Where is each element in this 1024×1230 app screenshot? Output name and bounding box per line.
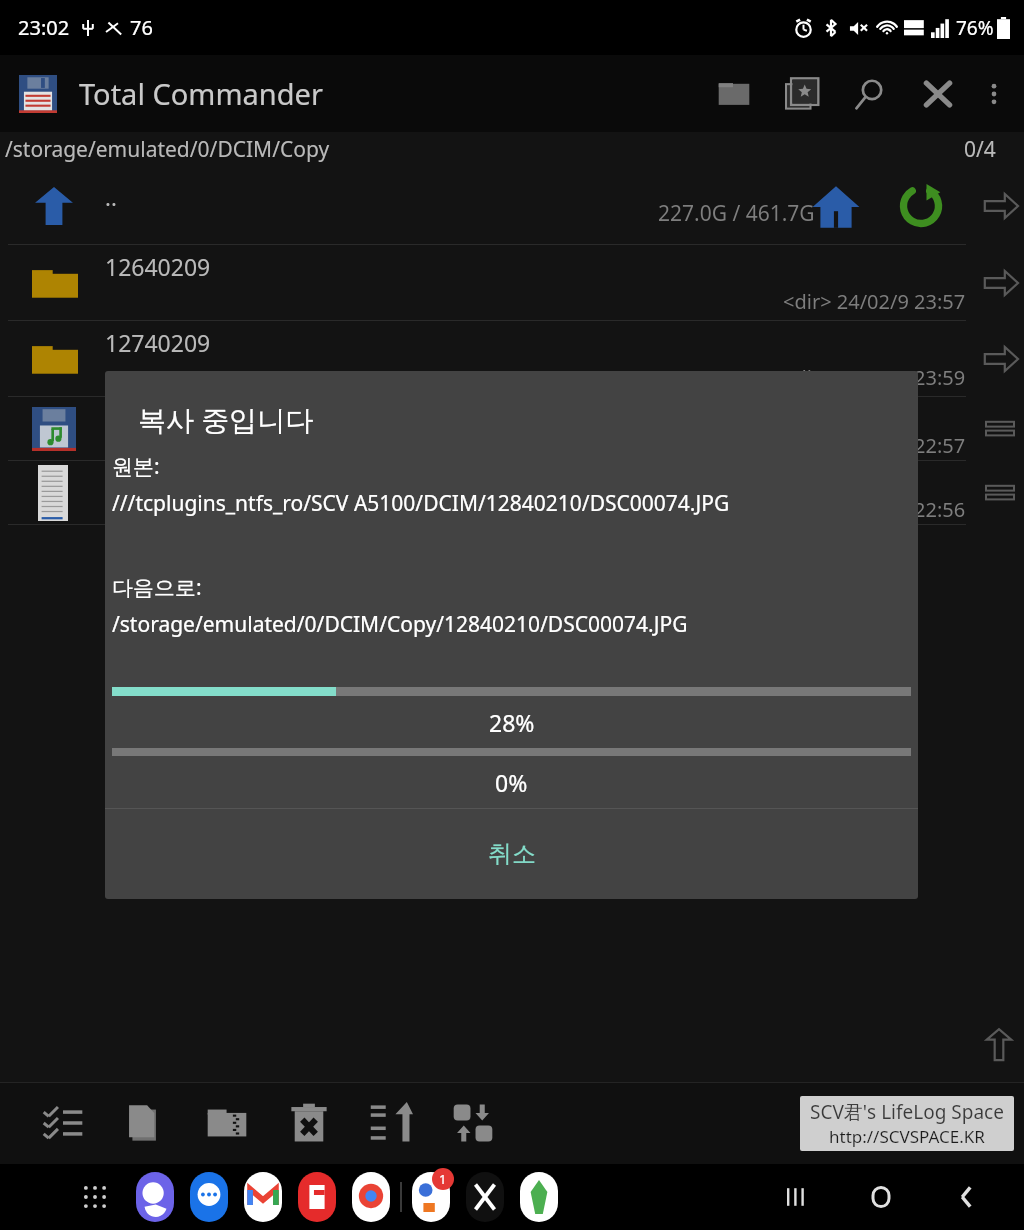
staticText: 76%: [956, 15, 994, 41]
staticText: SCV君's LifeLog Space: [810, 1099, 1004, 1125]
button[interactable]: 취소: [105, 809, 918, 899]
staticText: 다음으로:: [112, 573, 202, 602]
button[interactable]: Open folder: [700, 60, 768, 128]
staticText: 0/4: [964, 135, 996, 164]
staticText: /storage/emulated/0/DCIM/Copy: [5, 135, 330, 164]
button[interactable]: 12740209: [0, 321, 1024, 397]
button[interactable]: Recents: [752, 1164, 838, 1230]
button[interactable]: Select: [22, 1082, 104, 1164]
button[interactable]: Open: [980, 186, 1020, 226]
button[interactable]: App: [190, 1172, 228, 1222]
staticText: ..: [105, 182, 117, 212]
button[interactable]: Close: [904, 60, 972, 128]
button[interactable]: Zip: [186, 1082, 268, 1164]
button[interactable]: App: [466, 1172, 504, 1222]
staticText: 22:57: [914, 432, 966, 459]
button[interactable]: App: [298, 1172, 336, 1222]
button[interactable]: App: [352, 1172, 390, 1222]
button[interactable]: Back: [924, 1164, 1010, 1230]
staticText: 227.0G / 461.7G: [658, 199, 815, 228]
button[interactable]: 12640209: [0, 245, 1024, 321]
button[interactable]: Delete: [268, 1082, 350, 1164]
button[interactable]: Menu: [980, 409, 1020, 449]
staticText: ///tcplugins_ntfs_ro/SCV A5100/DCIM/1284…: [112, 489, 730, 518]
button[interactable]: Scroll to top: [978, 1024, 1020, 1066]
button[interactable]: 22:56: [0, 461, 1024, 525]
button[interactable]: Open: [980, 339, 1020, 379]
button[interactable]: ..: [0, 166, 1024, 245]
staticText: http://SCVSPACE.KR: [829, 1125, 985, 1148]
button[interactable]: More options: [972, 72, 1016, 116]
staticText: 0%: [495, 767, 528, 798]
staticText: 취소: [488, 839, 536, 869]
staticText: 12740209: [105, 327, 211, 358]
button[interactable]: 22:57: [0, 397, 1024, 461]
button[interactable]: Move: [432, 1082, 514, 1164]
staticText: <dir> 24/02/9 23:59: [783, 364, 966, 391]
button[interactable]: App: [412, 1172, 450, 1222]
button[interactable]: Search: [836, 60, 904, 128]
staticText: <dir> 24/02/9 23:57: [783, 288, 966, 315]
staticText: /storage/emulated/0/DCIM/Copy/12840210/D…: [112, 610, 688, 639]
button[interactable]: Home: [838, 1164, 924, 1230]
button[interactable]: Bookmarks: [768, 60, 836, 128]
button[interactable]: App: [136, 1172, 174, 1222]
staticText: Total Commander: [79, 74, 323, 113]
button[interactable]: Open: [980, 263, 1020, 303]
staticText: 1: [439, 1170, 447, 1188]
staticText: 원본:: [112, 452, 160, 481]
staticText: 76: [130, 14, 153, 41]
staticText: 23:02: [18, 14, 70, 41]
button[interactable]: App: [520, 1172, 558, 1222]
button[interactable]: Copy: [104, 1082, 186, 1164]
staticText: 복사 중입니다: [138, 400, 314, 438]
button[interactable]: Menu: [980, 473, 1020, 513]
button[interactable]: All apps: [72, 1174, 118, 1220]
button[interactable]: App: [244, 1172, 282, 1222]
staticText: 12640209: [105, 251, 211, 282]
button[interactable]: Sort: [350, 1082, 432, 1164]
staticText: 22:56: [914, 496, 966, 523]
staticText: 28%: [489, 707, 535, 738]
